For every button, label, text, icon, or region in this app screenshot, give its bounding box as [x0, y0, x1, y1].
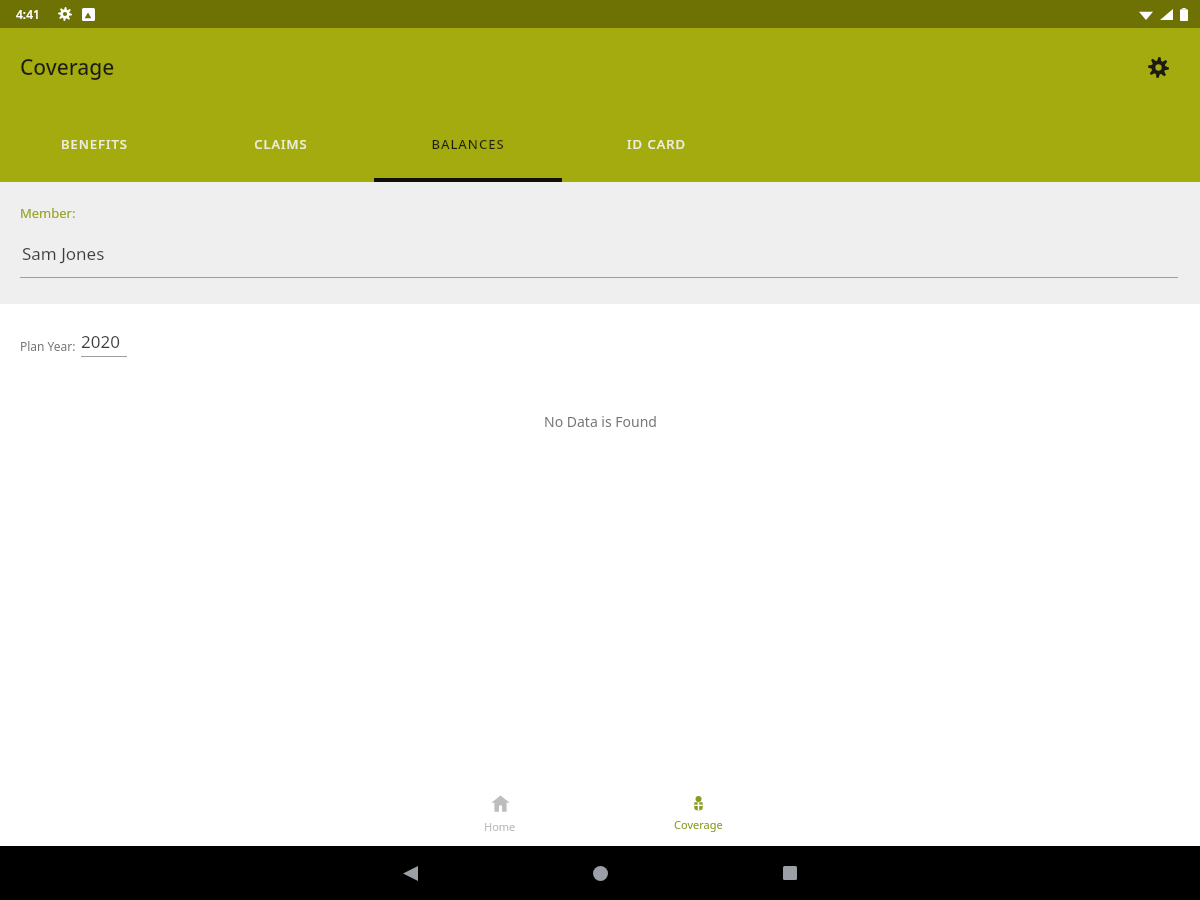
- staticText: Member:: [20, 204, 76, 222]
- staticText: Coverage: [674, 817, 723, 832]
- staticText: Plan Year:: [20, 338, 76, 354]
- staticText: BALANCES: [431, 135, 505, 153]
- button[interactable]: Home: [576, 849, 624, 897]
- staticText: CLAIMS: [254, 135, 308, 153]
- button[interactable]: Recent apps: [766, 849, 814, 897]
- staticText: Coverage: [20, 53, 115, 82]
- button[interactable]: Sam Jones: [0, 240, 1200, 278]
- staticText: No Data is Found: [544, 412, 657, 431]
- button[interactable]: Plan Year:: [20, 330, 127, 357]
- staticText: BENEFITS: [61, 135, 128, 153]
- button[interactable]: BALANCES: [374, 106, 562, 182]
- staticText: Sam Jones: [22, 242, 105, 265]
- button[interactable]: Back: [386, 849, 434, 897]
- staticText: 4:41: [16, 6, 40, 22]
- button[interactable]: ID CARD: [562, 106, 750, 182]
- button[interactable]: Coverage: [638, 782, 758, 846]
- button[interactable]: Settings: [1138, 47, 1178, 87]
- button[interactable]: Home: [440, 782, 560, 846]
- staticText: 2020: [81, 330, 120, 353]
- button[interactable]: BENEFITS: [0, 106, 188, 182]
- button[interactable]: CLAIMS: [187, 106, 375, 182]
- staticText: ID CARD: [627, 135, 686, 153]
- staticText: Home: [484, 819, 516, 834]
